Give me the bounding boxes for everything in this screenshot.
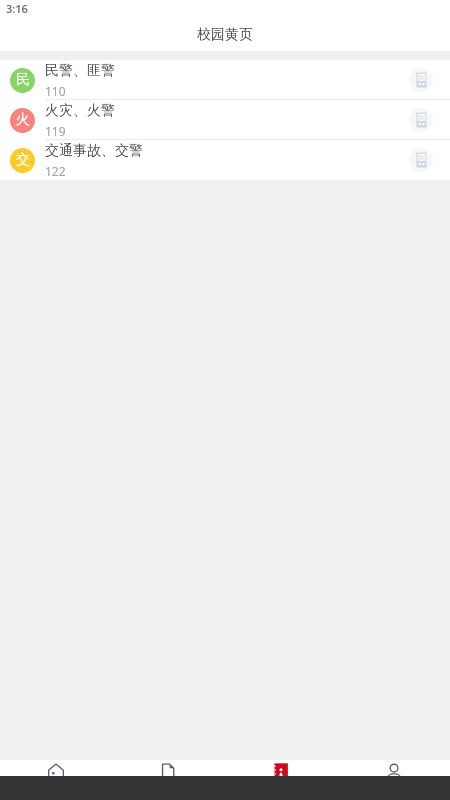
staticText: 交通事故、交警	[45, 142, 143, 160]
button[interactable]: Profile	[337, 760, 450, 776]
staticText: 民	[16, 71, 30, 89]
button[interactable]: Home	[0, 760, 112, 776]
button[interactable]: 民	[0, 60, 450, 100]
staticText: 校园黄页	[197, 26, 253, 44]
staticText: 交	[16, 151, 30, 169]
staticText: 火	[16, 111, 30, 129]
button[interactable]: Contacts	[224, 760, 337, 776]
staticText: 110	[45, 83, 66, 99]
staticText: 3:16	[6, 1, 28, 16]
button[interactable]: Call	[407, 146, 435, 174]
staticText: 民警、匪警	[45, 62, 115, 80]
button[interactable]: 火	[0, 100, 450, 140]
button[interactable]: Documents	[112, 760, 224, 776]
button[interactable]: Call	[407, 106, 435, 134]
staticText: 119	[45, 123, 66, 139]
staticText: 火灾、火警	[45, 102, 115, 120]
button[interactable]: 交	[0, 140, 450, 180]
button[interactable]: Call	[407, 66, 435, 94]
staticText: 122	[45, 163, 66, 179]
